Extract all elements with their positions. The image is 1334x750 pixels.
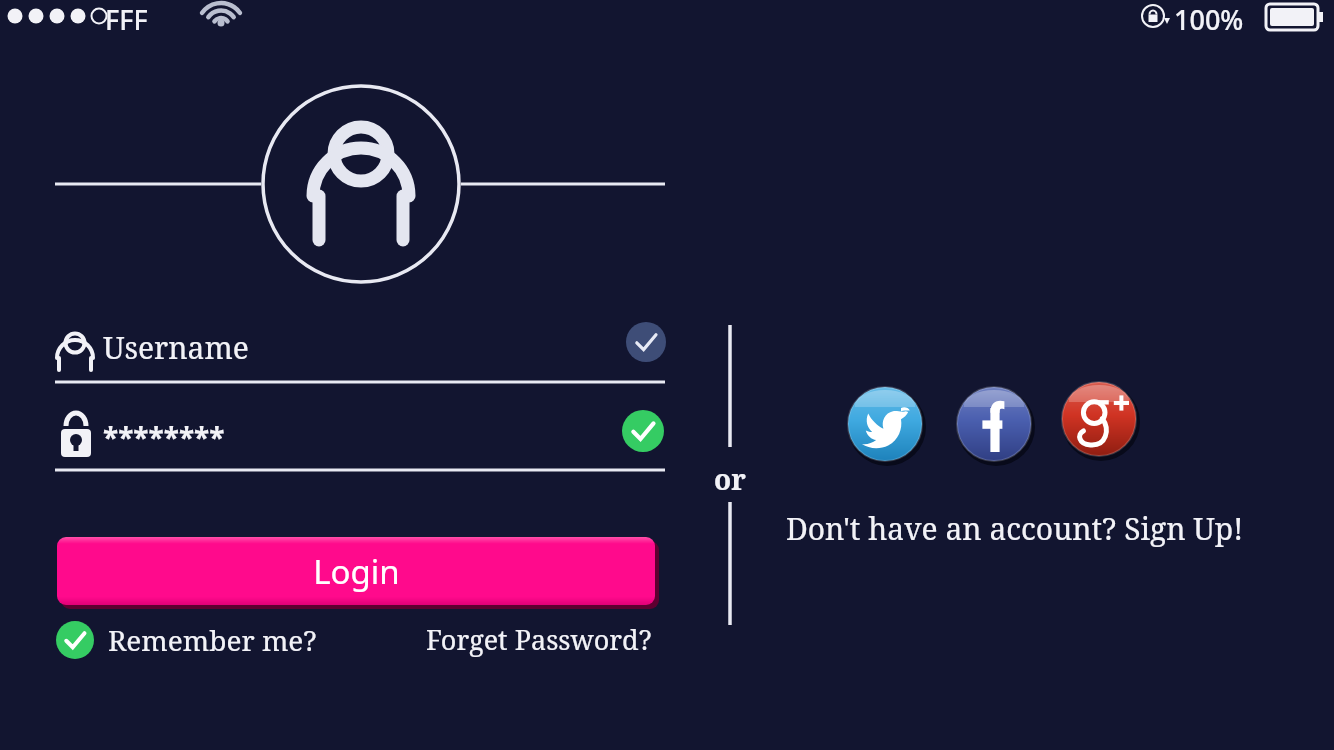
button[interactable]: ******** xyxy=(55,410,665,472)
button[interactable]: Don't have an account? Sign Up! xyxy=(786,508,1244,549)
button[interactable]: Password validated xyxy=(622,410,664,452)
staticText: Don't have an account? Sign Up! xyxy=(786,508,1244,549)
staticText: FFF xyxy=(105,1,148,38)
button[interactable]: Username validated xyxy=(626,322,666,362)
staticText: Forget Password? xyxy=(426,621,652,658)
staticText: Username xyxy=(103,327,249,368)
staticText: Remember me? xyxy=(108,621,317,659)
button[interactable]: Sign in with Google Plus xyxy=(1059,379,1139,459)
button[interactable]: Login xyxy=(57,537,655,605)
button[interactable]: Sign in with Facebook xyxy=(954,384,1034,464)
button[interactable]: Username xyxy=(55,322,665,384)
staticText: ******** xyxy=(103,418,225,456)
staticText: Login xyxy=(313,549,400,594)
staticText: 100% xyxy=(1174,1,1244,38)
button[interactable]: Remember me? xyxy=(56,620,317,660)
button[interactable]: Sign in with Twitter xyxy=(845,384,925,464)
staticText: or xyxy=(714,460,746,498)
button[interactable]: Forget Password? xyxy=(426,621,652,658)
